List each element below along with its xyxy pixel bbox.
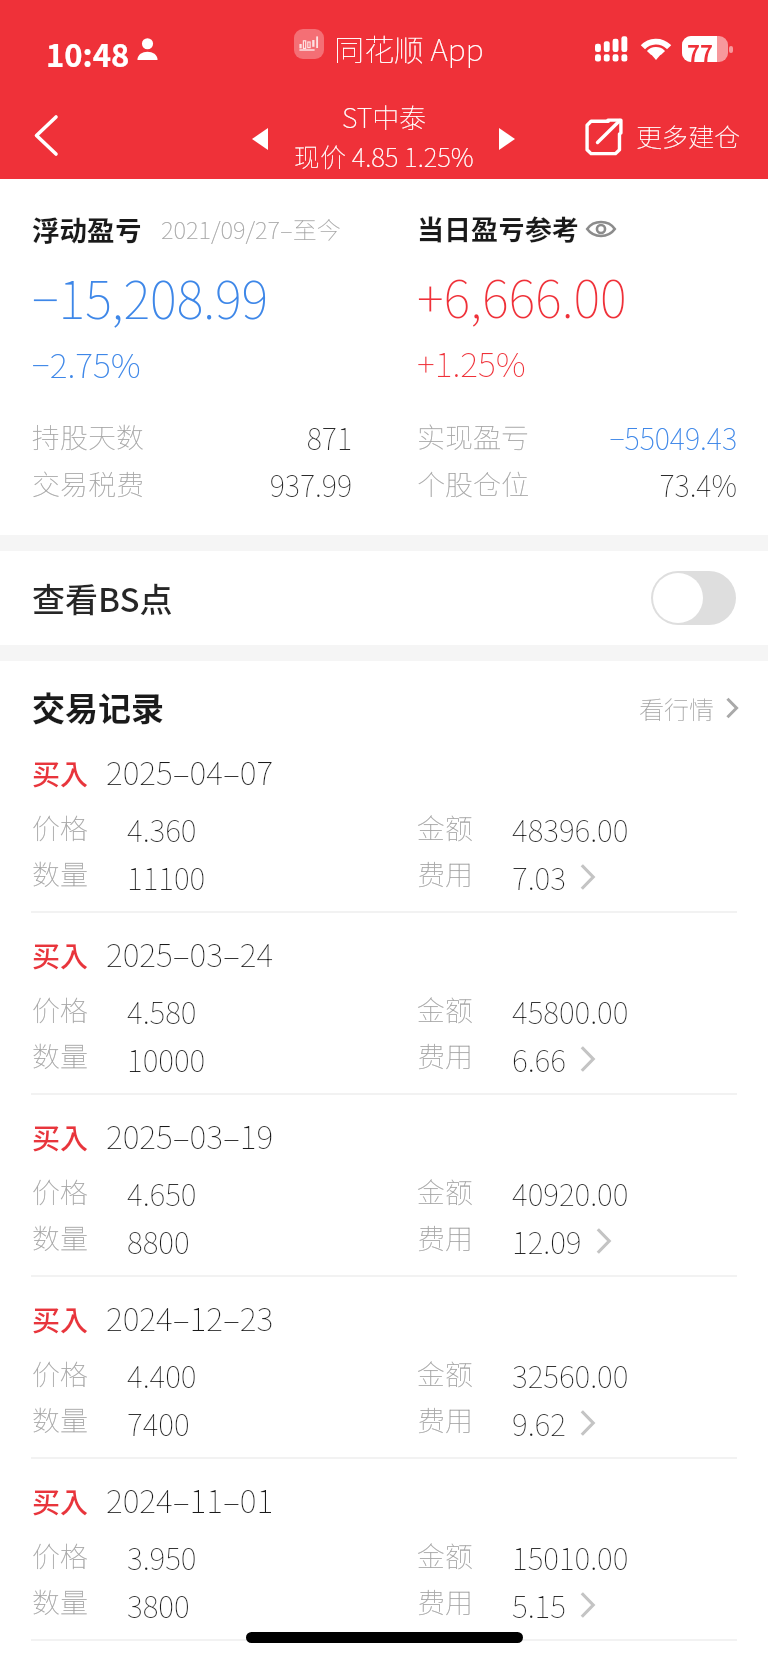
staticText: 7400 xyxy=(127,1401,190,1444)
staticText: 10000 xyxy=(127,1037,206,1080)
button[interactable]: 查看BS点 xyxy=(0,551,768,645)
staticText: 48396.00 xyxy=(512,807,629,850)
staticText: +1.25% xyxy=(417,338,526,387)
staticText: 数量 xyxy=(32,1581,89,1622)
button[interactable]: Back xyxy=(0,90,92,179)
staticText: 费用 xyxy=(417,1035,474,1076)
staticText: 数量 xyxy=(32,1035,89,1076)
button[interactable]: 买入 xyxy=(0,1459,768,1639)
staticText: 11100 xyxy=(127,855,206,898)
staticText: 交易税费 xyxy=(32,463,145,504)
staticText: 4.650 xyxy=(127,1171,197,1214)
staticText: 7.03 xyxy=(512,855,566,898)
staticText: 3.950 xyxy=(127,1535,197,1578)
staticText: 937.99 xyxy=(0,463,352,505)
staticText: −15,208.99 xyxy=(32,260,269,334)
staticText: 价格 xyxy=(32,1535,89,1576)
staticText: 实现盈亏 xyxy=(417,416,530,457)
staticText: 2024–11–01 xyxy=(106,1476,274,1522)
button[interactable]: 买入 xyxy=(0,1095,768,1275)
staticText: 77 xyxy=(687,36,713,62)
staticText: 10:48 xyxy=(46,31,130,76)
staticText: 买入 xyxy=(32,1299,89,1340)
staticText: 金额 xyxy=(417,1171,474,1212)
button[interactable]: Next stock xyxy=(479,107,535,169)
staticText: 价格 xyxy=(32,1353,89,1394)
staticText: 价格 xyxy=(32,989,89,1030)
button[interactable]: 买入 xyxy=(0,731,768,911)
button[interactable]: 看行情 xyxy=(639,690,738,726)
staticText: 45800.00 xyxy=(512,989,629,1032)
staticText: 3800 xyxy=(127,1583,190,1626)
staticText: 2025–03–24 xyxy=(106,930,274,976)
staticText: −2.75% xyxy=(32,339,141,388)
staticText: 费用 xyxy=(417,1217,474,1258)
staticText: 查看BS点 xyxy=(32,574,173,622)
staticText: 2024–12–23 xyxy=(106,1294,274,1340)
staticText: 12.09 xyxy=(512,1219,582,1262)
staticText: 买入 xyxy=(32,1481,89,1522)
staticText: 费用 xyxy=(417,853,474,894)
staticText: 买入 xyxy=(32,1117,89,1158)
staticText: 5.15 xyxy=(512,1583,566,1626)
staticText: 交易记录 xyxy=(32,683,164,731)
staticText: 6.66 xyxy=(512,1037,566,1080)
staticText: 8800 xyxy=(127,1219,190,1262)
staticText: 2025–03–19 xyxy=(106,1112,274,1158)
staticText: 73.4% xyxy=(384,463,737,505)
staticText: 数量 xyxy=(32,1217,89,1258)
staticText: 买入 xyxy=(32,753,89,794)
staticText: 2021/09/27–至今 xyxy=(161,211,341,246)
staticText: 9.62 xyxy=(512,1401,566,1444)
staticText: 数量 xyxy=(32,1399,89,1440)
staticText: ST中泰 xyxy=(342,97,427,136)
staticText: −55049.43 xyxy=(384,416,737,458)
staticText: 看行情 xyxy=(639,690,715,726)
staticText: 15010.00 xyxy=(512,1535,629,1578)
staticText: 费用 xyxy=(417,1399,474,1440)
staticText: 金额 xyxy=(417,1353,474,1394)
staticText: 个股仓位 xyxy=(417,463,530,504)
button[interactable]: 买入 xyxy=(0,913,768,1093)
staticText: 4.360 xyxy=(127,807,197,850)
staticText: 现价 4.85 1.25% xyxy=(294,137,474,175)
button[interactable]: Previous stock xyxy=(232,107,288,169)
staticText: +6,666.00 xyxy=(417,259,627,333)
staticText: 同花顺 App xyxy=(334,26,484,69)
staticText: 当日盈亏参考 xyxy=(417,209,579,248)
staticText: 金额 xyxy=(417,1535,474,1576)
staticText: 871 xyxy=(0,416,352,458)
staticText: 价格 xyxy=(32,1171,89,1212)
staticText: 更多建仓 xyxy=(636,117,741,155)
staticText: 费用 xyxy=(417,1581,474,1622)
staticText: 持股天数 xyxy=(32,416,145,457)
staticText: 32560.00 xyxy=(512,1353,629,1396)
button[interactable]: 买入 xyxy=(0,1277,768,1457)
staticText: 4.580 xyxy=(127,989,197,1032)
staticText: 价格 xyxy=(32,807,89,848)
staticText: 金额 xyxy=(417,807,474,848)
staticText: 2025–04–07 xyxy=(106,748,274,794)
staticText: 40920.00 xyxy=(512,1171,629,1214)
staticText: 数量 xyxy=(32,853,89,894)
staticText: 金额 xyxy=(417,989,474,1030)
staticText: 4.400 xyxy=(127,1353,197,1396)
staticText: 买入 xyxy=(32,935,89,976)
button[interactable]: 更多建仓 xyxy=(586,117,741,155)
staticText: 浮动盈亏 xyxy=(32,209,142,249)
